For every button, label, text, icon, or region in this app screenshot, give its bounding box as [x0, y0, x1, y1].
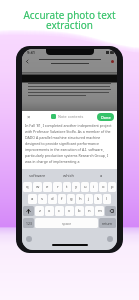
- button[interactable]: y: [72, 182, 80, 192]
- staticText: z: [39, 208, 41, 214]
- button[interactable]: Emoji: [26, 236, 32, 242]
- staticText: h: [79, 196, 82, 202]
- button[interactable]: return: [99, 218, 116, 228]
- staticText: g: [70, 196, 73, 202]
- button[interactable]: 123: [23, 218, 34, 228]
- button[interactable]: s: [38, 194, 47, 204]
- button[interactable]: Shift: [23, 206, 34, 216]
- button[interactable]: t: [63, 182, 71, 192]
- button[interactable]: k: [94, 194, 102, 204]
- button[interactable]: j: [85, 194, 93, 204]
- staticText: t: [66, 184, 68, 190]
- button[interactable]: d: [48, 194, 57, 204]
- staticText: p: [111, 184, 114, 190]
- staticText: l: [106, 196, 108, 202]
- staticText: m: [98, 208, 102, 214]
- staticText: 123: [26, 221, 32, 226]
- button[interactable]: Close: [25, 113, 33, 121]
- button[interactable]: p: [108, 182, 116, 192]
- button[interactable]: u: [81, 182, 89, 192]
- staticText: In Fall '81, I completed another indepen…: [25, 123, 114, 164]
- button[interactable]: x: [45, 206, 54, 216]
- button[interactable]: Done: [97, 113, 114, 121]
- staticText: q: [26, 184, 29, 190]
- button[interactable]: f: [58, 194, 66, 204]
- button[interactable]: v: [65, 206, 74, 216]
- staticText: 9:41: [27, 50, 35, 55]
- staticText: x: [48, 208, 51, 214]
- button[interactable]: b: [75, 206, 84, 216]
- staticText: k: [97, 196, 100, 202]
- staticText: w: [36, 184, 40, 190]
- staticText: o: [102, 184, 105, 190]
- staticText: y: [75, 184, 78, 190]
- button[interactable]: g: [67, 194, 75, 204]
- staticText: i: [93, 184, 95, 190]
- button[interactable]: m: [95, 206, 104, 216]
- button[interactable]: Microphone: [107, 236, 113, 242]
- button[interactable]: a: [28, 194, 37, 204]
- staticText: a: [31, 196, 34, 202]
- button[interactable]: i: [90, 182, 98, 192]
- staticText: s: [41, 196, 44, 202]
- button[interactable]: h: [76, 194, 84, 204]
- staticText: ×: [27, 113, 31, 121]
- staticText: u: [84, 184, 87, 190]
- button[interactable]: n: [85, 206, 94, 216]
- button[interactable]: a: [85, 169, 117, 181]
- button[interactable]: Backspace: [105, 206, 116, 216]
- button[interactable]: r: [53, 182, 62, 192]
- staticText: c: [58, 208, 61, 214]
- staticText: d: [51, 196, 54, 202]
- staticText: v: [68, 208, 71, 214]
- button[interactable]: c: [55, 206, 64, 216]
- staticText: r: [57, 184, 59, 190]
- button[interactable]: z: [35, 206, 44, 216]
- button[interactable]: l: [103, 194, 111, 204]
- staticText: software: [29, 173, 46, 178]
- staticText: Done: [101, 115, 111, 120]
- button[interactable]: o: [99, 182, 107, 192]
- button[interactable]: w: [33, 182, 42, 192]
- staticText: f: [61, 196, 63, 202]
- staticText: Accurate photo text extraction: [0, 8, 139, 32]
- staticText: Note contents: [58, 114, 84, 119]
- button[interactable]: which: [53, 169, 85, 181]
- staticText: b: [78, 208, 81, 214]
- staticText: a: [100, 173, 103, 178]
- staticText: return: [102, 221, 113, 226]
- button[interactable]: e: [43, 182, 52, 192]
- staticText: e: [46, 184, 49, 190]
- staticText: which: [63, 173, 75, 178]
- button[interactable]: q: [23, 182, 32, 192]
- button[interactable]: Back: [24, 58, 30, 64]
- button[interactable]: space: [35, 218, 98, 228]
- staticText: space: [62, 221, 72, 226]
- staticText: n: [88, 208, 91, 214]
- staticText: j: [88, 196, 90, 202]
- button[interactable]: software: [22, 169, 53, 181]
